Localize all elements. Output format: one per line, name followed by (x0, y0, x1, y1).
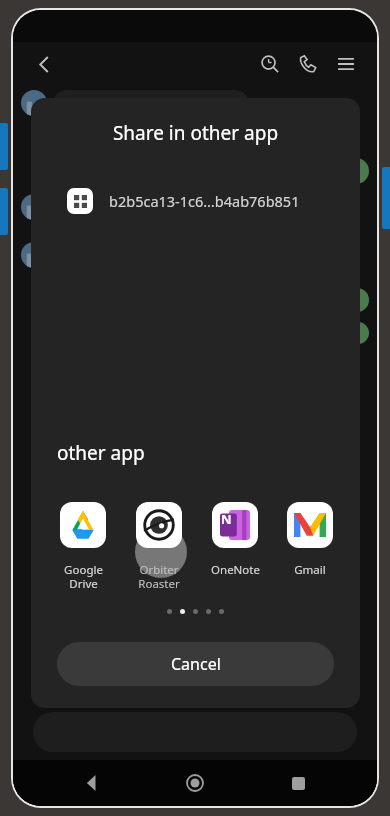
button[interactable]: Back (27, 47, 61, 81)
staticText: other app (57, 440, 145, 466)
button[interactable]: Gmail (273, 502, 346, 578)
button[interactable]: b2b5ca13-1c6…b4ab76b851 (31, 182, 360, 220)
button[interactable]: Home (171, 760, 219, 806)
button[interactable]: Back (68, 760, 116, 806)
staticText: Share in other app (31, 120, 360, 146)
staticText: b2b5ca13-1c6…b4ab76b851 (109, 191, 300, 211)
button[interactable]: N (197, 502, 273, 578)
staticText: Cancel (171, 653, 221, 675)
staticText: Google Drive (64, 562, 103, 591)
staticText: Orbiter Roaster (138, 562, 180, 591)
button[interactable]: Search history (253, 47, 287, 81)
staticText: N (221, 510, 232, 528)
staticText: OneNote (211, 562, 260, 578)
button[interactable]: Orbiter Roaster (121, 502, 197, 591)
staticText: Gmail (294, 562, 326, 578)
button[interactable]: Call (291, 47, 325, 81)
button[interactable]: Recents (274, 760, 322, 806)
button[interactable]: Google Drive (45, 502, 121, 591)
button[interactable]: Menu (329, 47, 363, 81)
button[interactable]: Cancel (57, 642, 334, 686)
